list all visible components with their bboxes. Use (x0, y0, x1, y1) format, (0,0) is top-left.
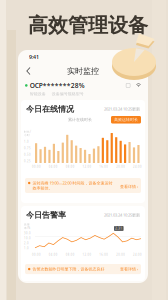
staticText: 0.75 (24, 146, 31, 150)
staticText: 0.50 (24, 153, 31, 156)
staticText: 20:00 (116, 253, 125, 256)
staticText: 1.0 (24, 246, 29, 250)
staticText: 08:00 (66, 165, 75, 168)
staticText: 12:00 (82, 165, 91, 168)
button[interactable]: 告警次数较昨日明显下降，设备状态良好 (25, 264, 141, 274)
staticText: 08:00 (66, 253, 75, 256)
staticText: 智能设备 (30, 91, 46, 96)
staticText: 9:41 (29, 53, 39, 61)
staticText: 运转高峰 19:00—22:00 时间段，设备全速运转 效率较佳。 (32, 180, 112, 191)
staticText: 04:00 (49, 165, 58, 168)
staticText: 2021.03.24 10:25更新 (104, 106, 140, 112)
staticText: 24:00 (133, 253, 142, 256)
button[interactable]: 返回 (22, 64, 34, 78)
staticText: 实时监控 (67, 66, 99, 76)
button[interactable]: 设备信息 (126, 83, 130, 87)
staticText: 设备编号规格型号 (52, 91, 84, 96)
staticText: 0.25 (24, 159, 31, 163)
staticText: 2.0 (24, 241, 29, 245)
staticText: 10.0 (24, 236, 31, 240)
button[interactable]: 累计在线时长 (65, 116, 95, 123)
staticText: 20:00 (116, 165, 125, 168)
staticText: OCP*******28% (30, 81, 85, 90)
button[interactable]: 网络状态 (136, 83, 141, 87)
staticText: 高效运转时长 (114, 117, 138, 122)
staticText: 今日在线情况 (26, 104, 74, 114)
staticText: 累计在线时长 (68, 117, 92, 122)
staticText: 2.31 (115, 227, 122, 230)
staticText: 12:00 (82, 253, 91, 256)
staticText: 2021.03.24 10:25更新 (104, 212, 140, 218)
staticText: 04:00 (49, 253, 58, 256)
staticText: 24:00 (133, 165, 142, 168)
staticText: 查看详情 › (120, 184, 138, 189)
staticText: 30.0 (24, 231, 31, 235)
staticText: 1.0 (24, 140, 29, 143)
staticText: 查看详情 › (120, 266, 138, 272)
staticText: 00:00 (32, 253, 41, 256)
staticText: 高效管理设备 (28, 13, 148, 38)
staticText: 16:00 (99, 253, 108, 256)
staticText: 今日告警率 (26, 210, 66, 220)
button[interactable]: 高效运转时长 (111, 116, 141, 123)
button[interactable]: 运转高峰 19:00—22:00 时间段，设备全速运转 效率较佳。 (25, 178, 141, 193)
staticText: 时长/小时 (24, 130, 31, 137)
staticText: 告警次数较昨日明显下降，设备状态良好 (32, 267, 104, 271)
staticText: 16:00 (99, 165, 108, 168)
staticText: 告警率/% (24, 223, 30, 230)
staticText: 00:00 (32, 165, 41, 168)
